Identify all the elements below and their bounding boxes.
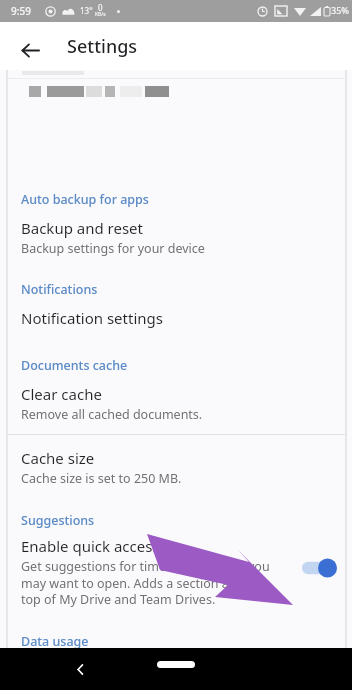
button[interactable]: Cache size — [8, 448, 345, 494]
staticText: Settings — [67, 34, 138, 59]
button[interactable]: Transfer files only over Wi-Fi — [8, 653, 345, 690]
staticText: Clear cache — [21, 384, 102, 404]
staticText: Data usage — [21, 633, 89, 650]
staticText: Cache size — [21, 448, 95, 468]
staticText: Backup settings for your device — [21, 240, 205, 257]
staticText: Notification settings — [21, 308, 163, 328]
button[interactable]: Backup and reset — [8, 218, 345, 264]
button[interactable]: Notification settings — [8, 308, 345, 342]
button[interactable]: Back — [64, 653, 96, 685]
staticText: Cache size is set to 250 MB. — [21, 470, 182, 487]
button[interactable]: Home — [157, 661, 195, 668]
staticText: 35% — [331, 4, 349, 16]
button[interactable]: Clear cache — [8, 384, 345, 430]
staticText: 0 — [98, 2, 103, 13]
staticText: 13° — [80, 5, 93, 16]
button[interactable]: Back — [12, 32, 48, 68]
staticText: Enable quick access — [21, 536, 160, 556]
staticText: Transfer files only over Wi-Fi — [21, 654, 219, 674]
button[interactable]: Toggle on — [300, 558, 338, 578]
staticText: KB/s — [95, 11, 106, 18]
staticText: Notifications — [21, 281, 98, 298]
staticText: Documents cache — [21, 357, 128, 374]
staticText: Get suggestions for time-relevant files … — [21, 558, 273, 607]
button[interactable]: Enable quick access — [8, 536, 345, 614]
staticText: Suggestions — [21, 512, 95, 529]
staticText: Remove all cached documents. — [21, 406, 203, 423]
staticText: Backup and reset — [21, 218, 143, 238]
staticText: Auto backup for apps — [21, 191, 149, 208]
staticText: 9:59 — [11, 4, 31, 18]
